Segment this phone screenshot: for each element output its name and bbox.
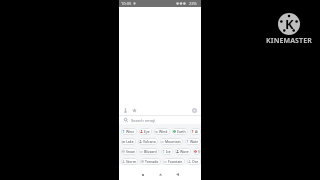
button[interactable]: Stickers: [131, 107, 138, 114]
staticText: Wine: [126, 129, 135, 134]
staticText: Mountain: [165, 139, 181, 144]
button[interactable]: Volcano: [138, 138, 158, 145]
staticText: 23%: [189, 1, 197, 6]
button[interactable]: Wave: [175, 148, 191, 155]
button[interactable]: Recent emoji: [122, 107, 129, 114]
staticText: Search emoji: [131, 118, 156, 123]
staticText: Snow: [126, 149, 135, 154]
staticText: 10:05: [121, 1, 132, 6]
staticText: Wave: [180, 149, 189, 154]
button[interactable]: Water: [185, 138, 201, 145]
button[interactable]: Settings: [191, 107, 198, 114]
staticText: Ocean: [192, 159, 199, 164]
button[interactable]: Wind: [154, 128, 170, 135]
staticText: Water: [190, 139, 199, 144]
button[interactable]: Wine: [121, 128, 137, 135]
button[interactable]: Recents: [137, 169, 148, 180]
staticText: Volcano: [143, 139, 156, 144]
button[interactable]: Fountain: [163, 158, 185, 165]
button[interactable]: Snow: [121, 148, 137, 155]
staticText: Storm: [126, 159, 136, 164]
button[interactable]: Tornado: [140, 158, 161, 165]
staticText: Blizzard: [144, 149, 157, 154]
button[interactable]: Search emoji: [119, 116, 201, 124]
staticText: KINEMASTER: [266, 36, 312, 46]
button[interactable]: Blizzard: [139, 148, 159, 155]
button[interactable]: Earth: [172, 128, 188, 135]
staticText: Sky: [198, 149, 199, 154]
staticText: K: [285, 15, 294, 33]
button[interactable]: Storm: [121, 158, 138, 165]
staticText: Fountain: [168, 159, 183, 164]
button[interactable]: Home: [155, 169, 166, 180]
staticText: Ice: [166, 149, 171, 154]
button[interactable]: Air: [190, 128, 201, 135]
staticText: Air: [195, 129, 199, 134]
button[interactable]: Ice: [161, 148, 173, 155]
button[interactable]: Eye: [139, 128, 152, 135]
button[interactable]: Lake: [121, 138, 136, 145]
button[interactable]: Sky: [193, 148, 201, 155]
staticText: Lake: [126, 139, 134, 144]
button[interactable]: Back: [172, 169, 183, 180]
button[interactable]: Ocean: [187, 158, 201, 165]
staticText: Earth: [177, 129, 186, 134]
staticText: Tornado: [145, 159, 159, 164]
staticText: Eye: [144, 129, 150, 134]
staticText: Wind: [159, 129, 168, 134]
button[interactable]: Mountain: [160, 138, 183, 145]
